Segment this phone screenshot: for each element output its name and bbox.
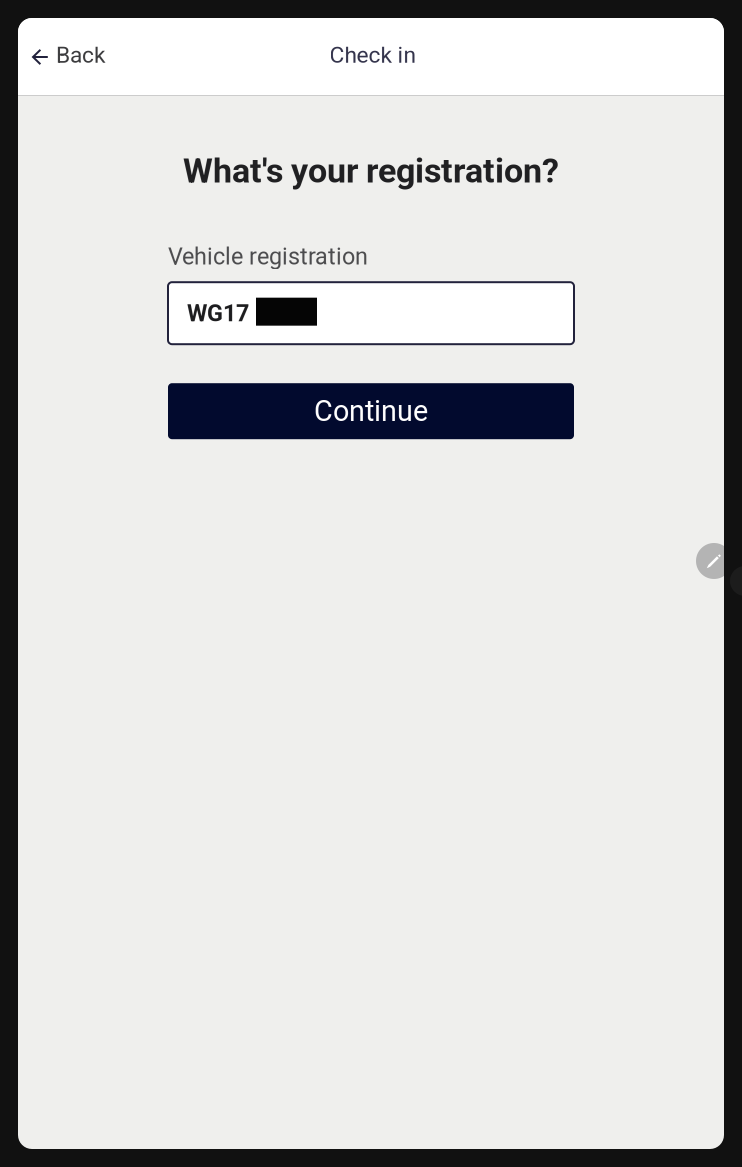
button[interactable]: WG17	[168, 282, 574, 344]
staticText: Continue	[314, 394, 428, 428]
staticText: Vehicle registration	[168, 243, 368, 270]
staticText: Back	[56, 42, 105, 68]
staticText: WG17	[187, 299, 249, 327]
button[interactable]: Edit	[696, 543, 732, 579]
button[interactable]: Continue	[168, 383, 574, 439]
staticText: Check in	[329, 42, 416, 68]
staticText: What's your registration?	[183, 151, 559, 191]
button[interactable]: Back	[18, 32, 119, 82]
